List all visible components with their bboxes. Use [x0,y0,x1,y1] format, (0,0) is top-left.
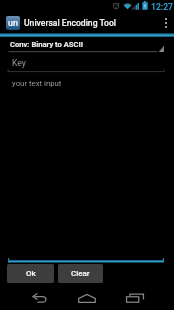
button[interactable]: Home [63,284,111,310]
button[interactable]: Conv: Binary to ASCII [7,36,165,52]
button[interactable]: Clear [58,264,103,283]
button[interactable]: Recent apps [111,284,159,310]
button[interactable]: your text input [7,76,165,262]
staticText: Universal Encoding Tool [24,18,117,28]
button[interactable]: Ok [7,264,54,283]
staticText: Ok [26,269,36,278]
staticText: un [8,18,18,29]
staticText: 12:27 [151,2,173,12]
button[interactable]: More options [158,12,174,34]
staticText: Key [12,58,26,68]
button[interactable]: Key [7,56,165,73]
staticText: your text input [12,79,62,88]
staticText: Conv: Binary to ASCII [10,40,83,49]
staticText: Clear [71,269,90,278]
button[interactable]: Back [15,284,63,310]
